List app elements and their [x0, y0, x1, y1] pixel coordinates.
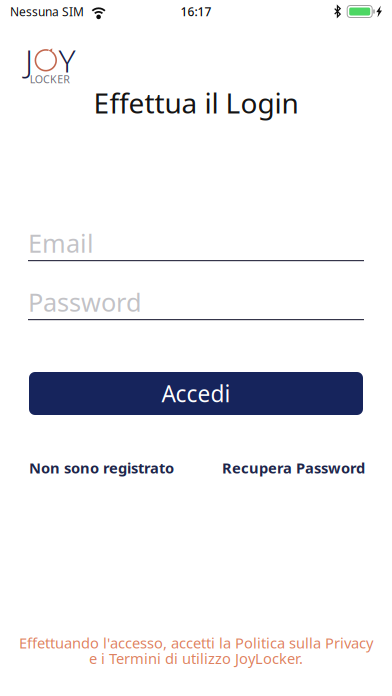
staticText: Effettuando l'accesso, accetti la Politi… — [19, 633, 373, 652]
button[interactable]: Recupera Password — [222, 458, 365, 477]
staticText: Non sono registrato — [29, 458, 174, 477]
staticText: Recupera Password — [222, 458, 365, 477]
staticText: Nessuna SIM — [10, 3, 84, 19]
staticText: Email — [28, 226, 94, 260]
staticText: J — [25, 39, 33, 81]
staticText: e i Termini di utilizzo JoyLocker. — [89, 648, 303, 668]
staticText: LOCKER — [30, 72, 70, 86]
staticText: Y — [58, 39, 75, 81]
staticText: Accedi — [161, 378, 230, 408]
button[interactable]: Non sono registrato — [29, 458, 174, 477]
staticText: Effettua il Login — [93, 84, 298, 121]
staticText: 16:17 — [180, 3, 211, 19]
staticText: Password — [28, 285, 142, 319]
button[interactable]: Accedi — [29, 372, 363, 415]
